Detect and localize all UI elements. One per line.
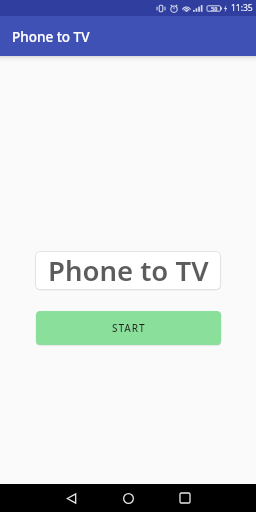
button[interactable]: Home	[114, 484, 142, 512]
staticText: 11:35	[231, 2, 253, 14]
staticText: Phone to TV	[12, 28, 90, 46]
staticText: 50	[211, 5, 218, 12]
staticText: START	[112, 321, 146, 335]
button[interactable]: START	[36, 311, 221, 345]
button[interactable]: Phone to TV	[35, 251, 221, 290]
button[interactable]: Recent apps	[171, 484, 199, 512]
button[interactable]: Back	[57, 484, 85, 512]
staticText: Phone to TV	[48, 252, 209, 289]
